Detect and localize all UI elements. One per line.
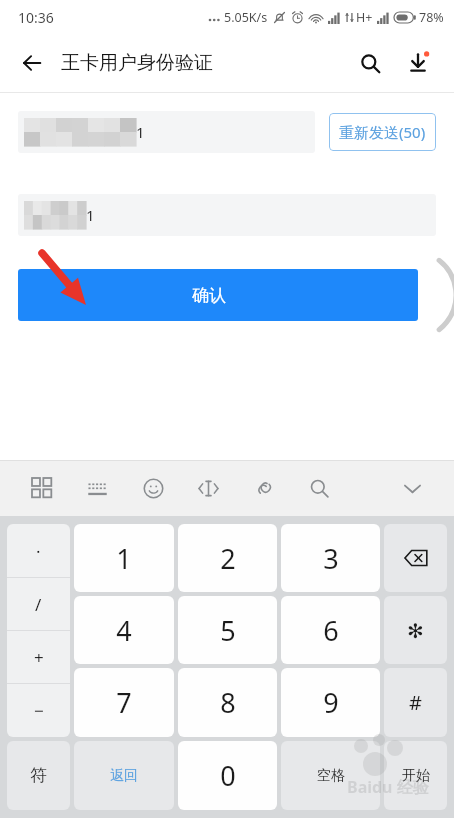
button[interactable]: 4 — [74, 596, 174, 664]
button[interactable]: 符 — [7, 741, 70, 810]
button[interactable]: Search — [350, 43, 390, 83]
button[interactable]: # — [384, 668, 447, 737]
button[interactable]: Backspace — [384, 524, 447, 592]
staticText: Baidu 经验 — [347, 776, 429, 798]
button[interactable]: Search — [299, 468, 339, 508]
button[interactable]: Move cursor — [188, 468, 228, 508]
staticText: # — [409, 689, 422, 716]
button[interactable]: 重新发送(50) — [329, 113, 436, 151]
staticText: 0 — [220, 757, 236, 794]
staticText: 重新发送(50) — [339, 122, 426, 142]
staticText: 王卡用户身份验证 — [61, 51, 213, 75]
staticText: 开始 — [402, 767, 430, 785]
button[interactable]: 1 — [74, 524, 174, 592]
button[interactable]: Downloads — [398, 43, 438, 83]
staticText: 确认 — [192, 285, 226, 306]
staticText: 返回 — [110, 767, 138, 785]
button[interactable]: 7 — [74, 668, 174, 737]
button[interactable]: 5 — [178, 596, 277, 664]
staticText: · — [36, 540, 41, 563]
button[interactable]: 空格 — [281, 741, 380, 810]
staticText: 1 — [136, 122, 145, 142]
staticText: 5 — [220, 612, 236, 649]
staticText: H+ — [356, 9, 373, 26]
button[interactable]: 1 — [18, 194, 436, 236]
button[interactable]: − — [7, 684, 70, 737]
staticText: 10:36 — [18, 8, 54, 27]
staticText: 6 — [323, 612, 339, 649]
staticText: + — [34, 646, 44, 669]
button[interactable]: Hide keyboard — [392, 468, 432, 508]
button[interactable]: Emoji — [133, 468, 173, 508]
button[interactable]: 9 — [281, 668, 380, 737]
button[interactable]: Clipboard — [244, 468, 284, 508]
button[interactable]: + — [7, 631, 70, 684]
button[interactable]: 6 — [281, 596, 380, 664]
button[interactable]: 确认 — [18, 269, 418, 321]
button[interactable]: 1 — [18, 111, 315, 153]
staticText: 1 — [86, 205, 95, 225]
staticText: 78% — [419, 9, 444, 26]
staticText: / — [35, 593, 42, 616]
button[interactable]: Keyboard — [77, 468, 117, 508]
staticText: ✻ — [407, 619, 424, 642]
button[interactable]: Back — [10, 41, 54, 85]
staticText: 5.05K/s — [224, 9, 268, 26]
staticText: 空格 — [317, 767, 345, 785]
staticText: 8 — [220, 684, 236, 721]
staticText: − — [34, 699, 44, 722]
button[interactable]: ✻ — [384, 596, 447, 664]
staticText: 9 — [323, 684, 339, 721]
staticText: 1 — [116, 540, 132, 577]
staticText: 4 — [116, 612, 132, 649]
staticText: 7 — [116, 684, 132, 721]
button[interactable]: 返回 — [74, 741, 174, 810]
staticText: 3 — [323, 540, 339, 577]
button[interactable]: Apps — [22, 468, 62, 508]
button[interactable]: 3 — [281, 524, 380, 592]
button[interactable]: 0 — [178, 741, 277, 810]
staticText: 2 — [220, 540, 236, 577]
button[interactable]: 2 — [178, 524, 277, 592]
button[interactable]: · — [7, 524, 70, 578]
staticText: 符 — [30, 765, 47, 786]
button[interactable]: 8 — [178, 668, 277, 737]
button[interactable]: 开始 — [384, 741, 447, 810]
button[interactable]: / — [7, 578, 70, 631]
